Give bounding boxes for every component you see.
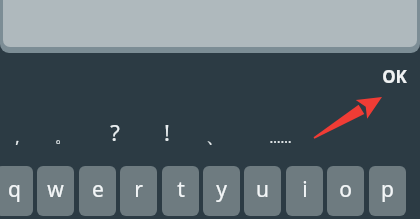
button[interactable]: q xyxy=(0,166,33,216)
staticText: u xyxy=(256,175,269,204)
staticText: o xyxy=(339,175,352,204)
button[interactable]: e xyxy=(79,166,116,216)
staticText: t xyxy=(177,175,185,204)
staticText: ? xyxy=(110,117,120,147)
staticText: , xyxy=(15,126,20,148)
button[interactable]: y xyxy=(203,166,240,216)
staticText: p xyxy=(381,175,394,204)
button[interactable]: ? xyxy=(100,115,130,149)
button[interactable] xyxy=(0,0,420,53)
button[interactable]: u xyxy=(244,166,281,216)
button[interactable]: OK xyxy=(372,61,416,91)
button[interactable]: 、 xyxy=(200,120,230,154)
staticText: q xyxy=(8,175,21,204)
staticText: 。 xyxy=(55,127,71,147)
staticText: i xyxy=(302,175,308,204)
staticText: 、 xyxy=(206,126,224,149)
button[interactable]: w xyxy=(37,166,74,216)
button[interactable]: i xyxy=(286,166,323,216)
staticText: y xyxy=(216,175,227,204)
staticText: w xyxy=(47,175,64,204)
button[interactable]: 。 xyxy=(48,120,78,154)
staticText: OK xyxy=(382,65,407,88)
staticText: ! xyxy=(164,117,170,147)
staticText: …… xyxy=(269,128,292,147)
button[interactable]: p xyxy=(369,166,406,216)
button[interactable]: t xyxy=(162,166,199,216)
button[interactable]: …… xyxy=(258,120,302,154)
other: Arrow pointing to OK xyxy=(305,90,390,145)
button[interactable]: o xyxy=(327,166,364,216)
button[interactable]: ! xyxy=(152,115,182,149)
staticText: r xyxy=(134,175,143,204)
staticText: e xyxy=(92,175,104,204)
button[interactable]: r xyxy=(120,166,157,216)
button[interactable]: , xyxy=(2,120,32,154)
